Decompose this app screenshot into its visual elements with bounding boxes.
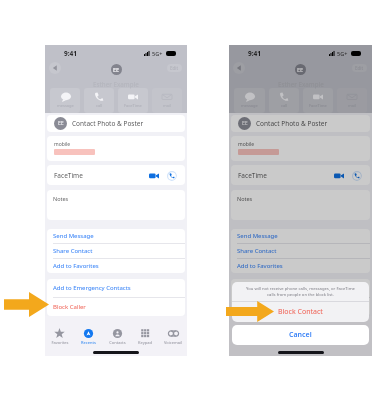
button[interactable]: Voicemail (159, 328, 187, 345)
button[interactable]: FaceTime (118, 88, 148, 113)
staticText: 9:41 (64, 49, 77, 58)
button[interactable]: Send Message (231, 229, 370, 243)
button[interactable]: message (50, 88, 80, 113)
button[interactable]: EE (54, 115, 185, 132)
staticText: FaceTime (124, 103, 142, 108)
staticText: Edit (355, 65, 364, 71)
staticText: Share Contact (237, 247, 277, 255)
button[interactable]: Add to Favorites (231, 259, 370, 273)
staticText: Send Message (53, 232, 94, 240)
staticText: 9:41 (248, 49, 261, 58)
staticText: Notes (237, 195, 253, 202)
button[interactable]: Share Contact (47, 244, 185, 258)
staticText: mobile (54, 141, 71, 148)
button[interactable]: Back (49, 62, 61, 74)
staticText: 5G+ (152, 50, 163, 57)
staticText: Contact Photo & Poster (72, 119, 144, 128)
staticText: FaceTime (309, 103, 327, 108)
button[interactable]: Block Caller (47, 298, 185, 316)
staticText: mail (163, 103, 172, 108)
staticText: Share Contact (53, 247, 93, 255)
button[interactable]: Contacts (285, 328, 314, 345)
button[interactable]: Cancel (232, 325, 369, 345)
button[interactable]: mobile (54, 141, 185, 161)
staticText: Esther Example (93, 80, 139, 88)
staticText: EE (242, 120, 248, 127)
button[interactable]: Block Contact callout (226, 301, 274, 322)
button[interactable]: Add to Emergency Contacts (231, 279, 370, 297)
button[interactable]: Voicemail (343, 328, 372, 345)
staticText: Send Message (237, 232, 278, 240)
staticText: Notes (53, 195, 69, 202)
staticText: EE (113, 66, 120, 73)
staticText: FaceTime (54, 171, 83, 180)
staticText: Add to Emergency Contacts (237, 284, 315, 292)
staticText: mobile (238, 141, 255, 148)
staticText: Add to Favorites (53, 262, 99, 270)
button[interactable]: Block Contact (232, 302, 369, 322)
staticText: Cancel (289, 330, 312, 340)
button[interactable]: Edit (352, 64, 367, 72)
staticText: Keypad (138, 340, 152, 345)
button[interactable]: message (234, 88, 265, 113)
staticText: mail (348, 103, 357, 108)
button[interactable]: Keypad (131, 328, 159, 345)
button[interactable]: Add to Favorites (47, 259, 185, 273)
button[interactable]: EE (238, 115, 370, 132)
button[interactable]: Add to Emergency Contacts (47, 279, 185, 297)
staticText: 5G+ (337, 50, 348, 57)
button[interactable]: Block Caller callout (4, 292, 49, 317)
staticText: call (281, 103, 288, 108)
staticText: EE (58, 120, 64, 127)
button[interactable]: FaceTime video (148, 170, 159, 181)
button[interactable]: Contacts (103, 328, 131, 345)
button[interactable]: Favorites (45, 328, 74, 345)
button[interactable]: Back (233, 62, 245, 74)
staticText: Voicemail (349, 340, 367, 345)
button[interactable]: Edit (167, 64, 182, 72)
button[interactable]: mobile (238, 141, 370, 161)
button[interactable]: Block Caller (231, 298, 370, 316)
button[interactable]: FaceTime video (333, 170, 344, 181)
staticText: Edit (170, 65, 179, 71)
staticText: FaceTime (238, 171, 267, 180)
staticText: Recents (81, 340, 96, 345)
button[interactable]: Favorites (229, 328, 257, 345)
staticText: message (241, 103, 258, 108)
staticText: Favorites (51, 340, 69, 345)
staticText: Contacts (109, 340, 126, 345)
staticText: Add to Favorites (237, 262, 283, 270)
staticText: Block Caller (53, 303, 86, 311)
button[interactable]: call (269, 88, 299, 113)
staticText: Block Caller (237, 303, 270, 311)
button[interactable]: Send Message (47, 229, 185, 243)
staticText: message (57, 103, 74, 108)
staticText: Voicemail (164, 340, 182, 345)
button[interactable]: FaceTime (303, 88, 333, 113)
staticText: Favorites (234, 340, 252, 345)
button[interactable]: call (84, 88, 114, 113)
staticText: EE (297, 66, 304, 73)
staticText: Contact Photo & Poster (256, 119, 328, 128)
staticText: call (96, 103, 103, 108)
button[interactable]: Recents (74, 328, 103, 345)
staticText: Block Contact (278, 307, 323, 317)
button[interactable]: FaceTime audio (351, 170, 362, 181)
staticText: You will not receive phone calls, messag… (246, 286, 355, 298)
staticText: Add to Emergency Contacts (53, 284, 131, 292)
button[interactable]: FaceTime audio (166, 170, 177, 181)
button[interactable]: Share Contact (231, 244, 370, 258)
